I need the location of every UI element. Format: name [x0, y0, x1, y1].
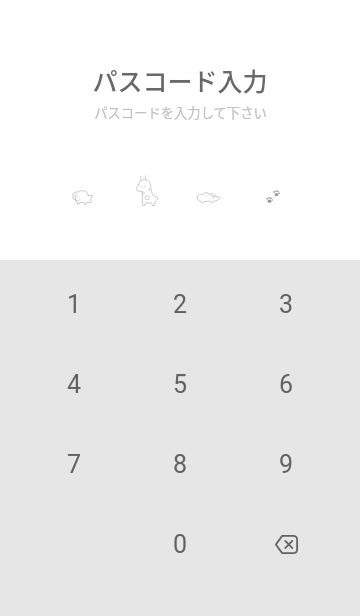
button[interactable]: 7 [21, 424, 127, 504]
button[interactable]: 5 [127, 344, 233, 424]
staticText: 3 [279, 290, 294, 319]
button[interactable]: 4 [21, 344, 127, 424]
button[interactable]: 8 [127, 424, 233, 504]
staticText: 5 [173, 370, 188, 399]
staticText: 0 [173, 530, 188, 559]
button[interactable]: 0 [127, 504, 233, 584]
button[interactable]: 6 [233, 344, 339, 424]
staticText: 9 [279, 450, 294, 479]
staticText: 7 [67, 450, 82, 479]
staticText: 8 [173, 450, 188, 479]
staticText: 6 [279, 370, 294, 399]
staticText: パスコードを入力して下さい [94, 103, 267, 122]
staticText: 2 [173, 290, 188, 319]
button[interactable]: 1 [21, 264, 127, 344]
staticText: パスコード入力 [92, 62, 268, 98]
button[interactable]: 2 [127, 264, 233, 344]
button[interactable]: Backspace [233, 504, 339, 584]
staticText: 4 [67, 370, 82, 399]
button[interactable]: 9 [233, 424, 339, 504]
button[interactable]: 3 [233, 264, 339, 344]
staticText: 1 [67, 290, 82, 319]
